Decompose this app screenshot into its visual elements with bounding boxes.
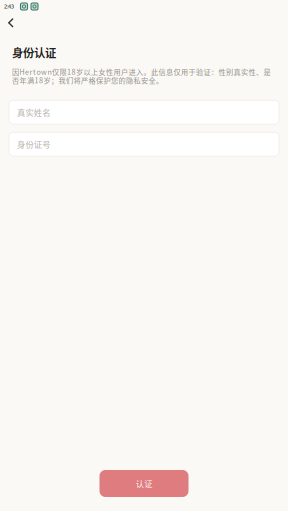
button[interactable]: Back: [0, 13, 288, 33]
staticText: 2:43: [4, 3, 14, 10]
staticText: 因Hertown仅限18岁以上女性用户进入。此信息仅用于验证：性别真实性、是否年…: [12, 66, 270, 85]
staticText: 认证: [136, 477, 152, 489]
button[interactable]: 身份证号: [9, 132, 279, 156]
staticText: 身份证号: [17, 138, 50, 150]
button[interactable]: 真实姓名: [9, 100, 279, 124]
staticText: 真实姓名: [17, 106, 50, 118]
button[interactable]: 认证: [99, 470, 188, 497]
staticText: 身份认证: [12, 44, 56, 60]
